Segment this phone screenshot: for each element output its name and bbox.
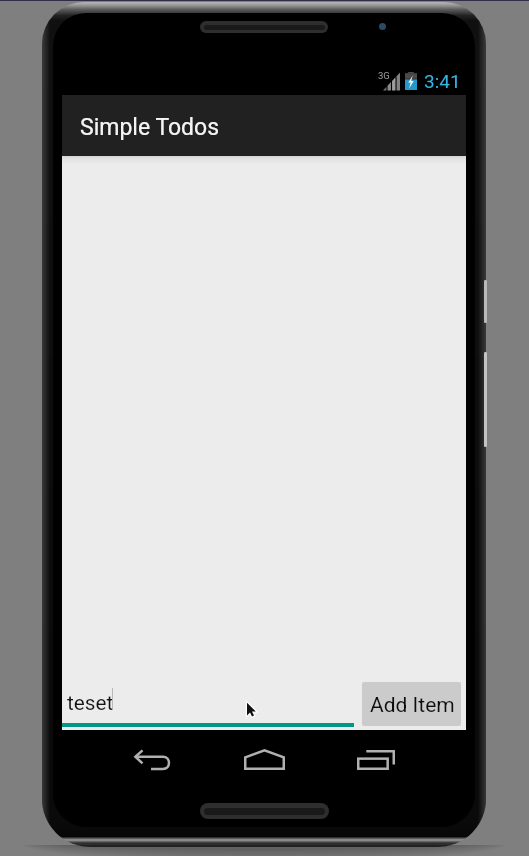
button[interactable]: Add Item [362, 682, 461, 726]
staticText: teset [67, 691, 114, 715]
staticText: Simple Todos [80, 114, 220, 141]
staticText: Add Item [370, 693, 455, 718]
button[interactable]: Back [122, 730, 182, 790]
button[interactable]: Home [234, 730, 294, 790]
staticText: 3:41 [424, 70, 461, 92]
staticText: 3G [378, 70, 390, 81]
button[interactable]: Recent apps [346, 730, 406, 790]
button[interactable]: teset [62, 687, 354, 727]
